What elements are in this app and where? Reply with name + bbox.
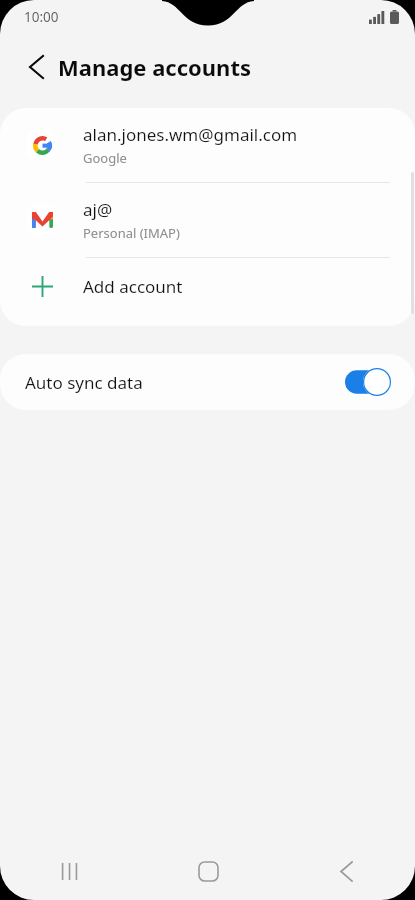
button[interactable]: aj@ xyxy=(0,183,415,257)
staticText: Google xyxy=(83,149,127,167)
staticText: Personal (IMAP) xyxy=(83,224,180,242)
staticText: 10:00 xyxy=(24,8,59,26)
button[interactable]: Recent apps xyxy=(0,842,139,900)
button[interactable]: Back xyxy=(277,842,415,900)
staticText: aj@ xyxy=(83,198,113,221)
button[interactable]: alan.jones.wm@gmail.com xyxy=(0,108,415,182)
button[interactable]: Back xyxy=(14,45,58,89)
button[interactable]: Add account xyxy=(0,258,415,314)
staticText: Manage accounts xyxy=(58,52,251,82)
button[interactable]: Home xyxy=(139,842,277,900)
staticText: alan.jones.wm@gmail.com xyxy=(83,123,298,146)
staticText: Auto sync data xyxy=(25,371,345,394)
button[interactable]: Auto sync data xyxy=(0,354,415,410)
staticText: Add account xyxy=(83,275,183,298)
